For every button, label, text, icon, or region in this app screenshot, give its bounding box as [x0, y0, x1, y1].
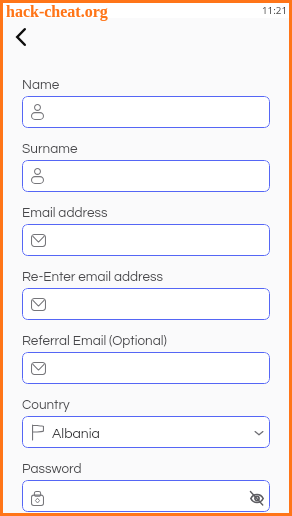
staticText: Referral Email (Optional): [22, 334, 167, 348]
staticText: Re-Enter email address: [22, 270, 164, 284]
staticText: Albania: [52, 427, 100, 441]
button[interactable]: [22, 96, 270, 128]
staticText: Name: [22, 78, 60, 92]
button[interactable]: [22, 352, 270, 384]
staticText: hack-cheat.org: [6, 3, 108, 21]
button[interactable]: Albania: [22, 416, 270, 448]
button[interactable]: [22, 288, 270, 320]
button[interactable]: [22, 160, 270, 192]
staticText: Password: [22, 462, 82, 476]
staticText: Surname: [22, 142, 78, 156]
button[interactable]: Back: [8, 24, 34, 50]
staticText: 11:21: [262, 4, 288, 17]
staticText: Country: [22, 398, 70, 412]
button[interactable]: Show password: [247, 488, 267, 508]
staticText: Email address: [22, 206, 108, 220]
button[interactable]: Show password: [22, 480, 270, 512]
button[interactable]: [22, 224, 270, 256]
